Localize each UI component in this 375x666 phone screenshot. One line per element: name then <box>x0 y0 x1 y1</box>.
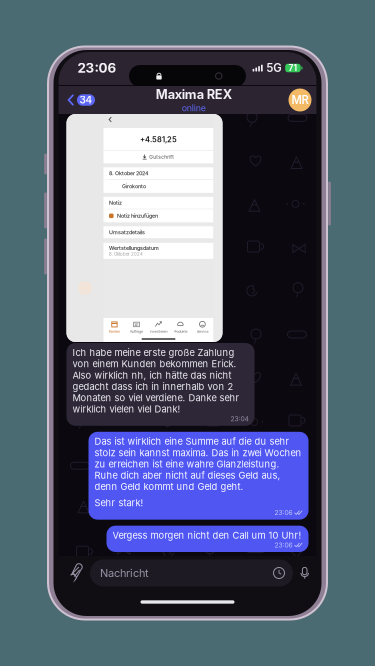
staticText: 23:04 <box>230 415 248 423</box>
staticText: Ruhe dich aber nicht auf dieses Geld aus… <box>94 470 280 481</box>
staticText: +4.581,25 <box>140 135 177 144</box>
staticText: zu erreichen ist eine wahre Glanzleistun… <box>94 458 279 470</box>
button[interactable]: Record voice message <box>293 559 317 587</box>
staticText: Vergess morgen nicht den Call um 10 Uhr! <box>112 530 301 541</box>
staticText: 8. Oktober 2024 <box>109 252 143 257</box>
staticText: stolz sein kannst maxima. Das in zwei Wo… <box>94 447 301 458</box>
staticText: 23:06 <box>77 60 116 76</box>
staticText: Also wirklich nh, ich hätte das nicht <box>72 370 231 381</box>
staticText: Service <box>196 329 208 333</box>
staticText: 34 <box>79 94 92 106</box>
button[interactable]: Message text field <box>90 559 293 586</box>
staticText: Notiz <box>109 200 122 206</box>
staticText: 5G <box>266 61 281 75</box>
staticText: wirklich vielen viel Dank! <box>72 403 180 415</box>
staticText: online <box>182 103 206 113</box>
staticText: gedacht dass ich in innerhalb von 2 <box>72 381 233 392</box>
staticText: MR <box>291 93 308 107</box>
staticText: Sehr stark! <box>94 497 143 509</box>
staticText: Gutschrift <box>149 154 174 160</box>
button[interactable]: Maxima REX profile <box>288 88 311 111</box>
staticText: von einem Kunden bekommen Erick. <box>72 358 236 370</box>
staticText: Wertstellungsdatum <box>109 245 159 251</box>
staticText: Maxima REX <box>156 87 232 102</box>
staticText: Notiz hinzufügen <box>117 213 158 219</box>
staticText: Investieren <box>149 329 167 333</box>
staticText: Monaten so viel verdiene. Danke sehr <box>72 392 239 403</box>
staticText: denn Geld kommt und Geld geht. <box>94 481 243 492</box>
staticText: Nachricht <box>100 566 149 580</box>
button[interactable]: Attach file <box>60 558 90 588</box>
staticText: Produkte <box>173 329 187 333</box>
staticText: Girokonto <box>122 183 146 190</box>
staticText: Das ist wirklich eine Summe auf die du s… <box>94 436 289 447</box>
staticText: Aufträge <box>130 329 143 333</box>
staticText: 23:06 <box>274 541 292 549</box>
staticText: 71 <box>288 63 297 73</box>
staticText: 8. Oktober 2024 <box>109 170 149 177</box>
button[interactable]: Back to chats, 34 unread <box>67 87 103 113</box>
staticText: Konten <box>109 329 120 333</box>
staticText: 23:06 <box>274 509 292 517</box>
staticText: Ich habe meine erste große Zahlung <box>72 347 234 358</box>
staticText: Umsatzdetails <box>109 229 145 236</box>
